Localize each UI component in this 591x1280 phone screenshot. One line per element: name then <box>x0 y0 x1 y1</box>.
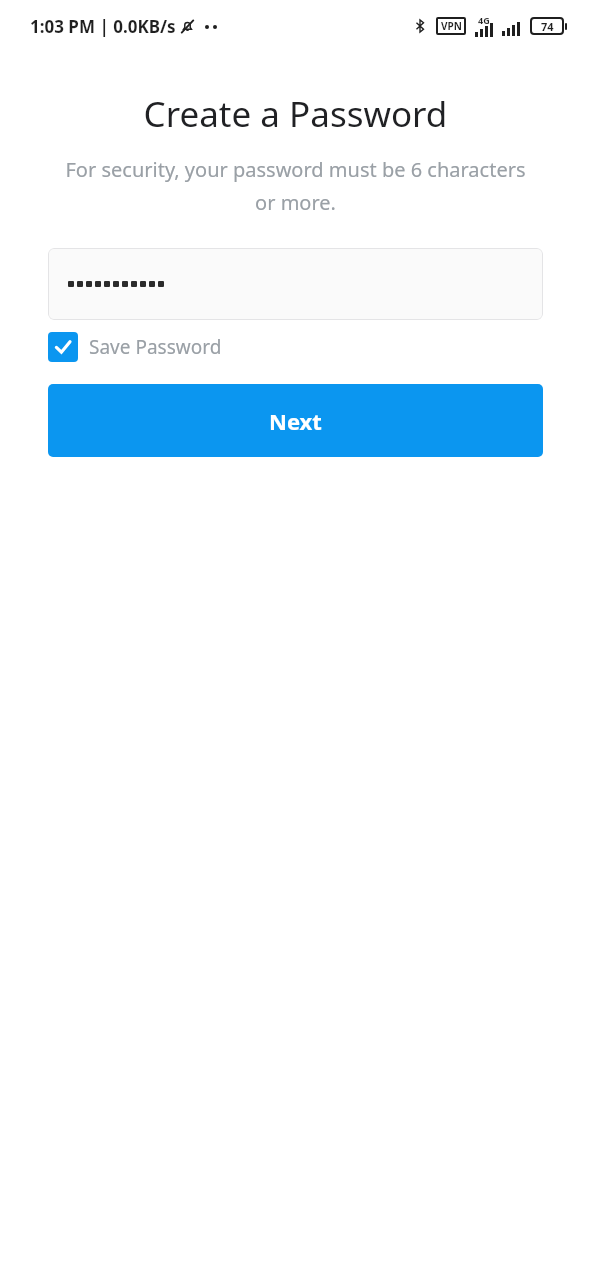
button[interactable]: Next <box>48 384 543 457</box>
staticText: 74 <box>541 19 554 34</box>
staticText: For security, your password must be 6 ch… <box>58 156 533 216</box>
staticText: Save Password <box>89 334 222 360</box>
staticText: 1:03 PM | 0.0KB/s <box>30 15 176 38</box>
staticText: Create a Password <box>0 90 591 138</box>
staticText: 4G <box>478 14 490 26</box>
staticText: VPN <box>441 19 462 33</box>
button[interactable] <box>48 248 543 320</box>
staticText: Next <box>269 406 322 436</box>
button[interactable]: Save Password <box>48 332 222 362</box>
